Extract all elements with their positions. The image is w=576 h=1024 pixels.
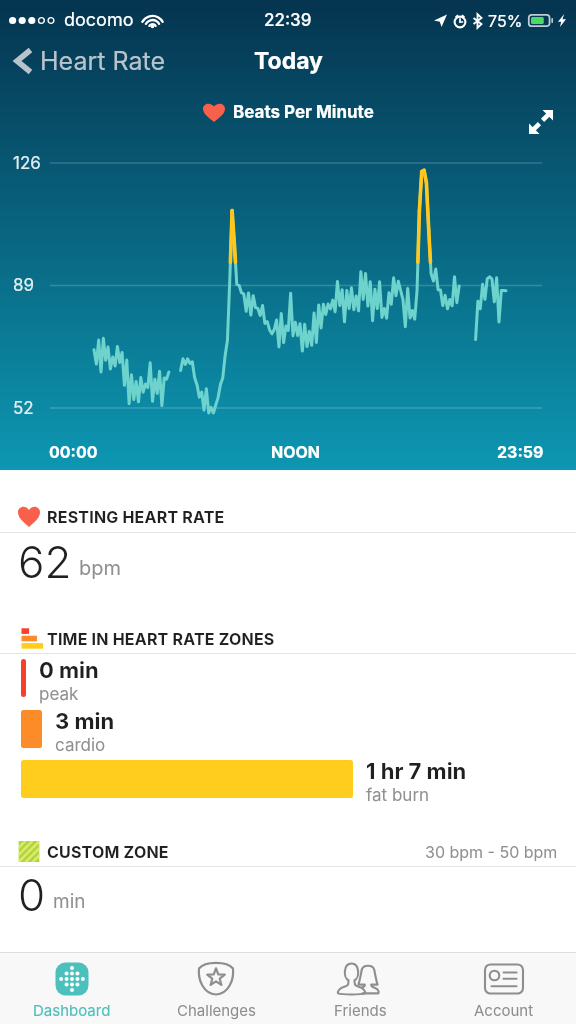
staticText: fat burn (366, 785, 430, 806)
staticText: min (53, 890, 86, 913)
staticText: 0 (18, 868, 46, 921)
staticText: TIME IN HEART RATE ZONES (47, 629, 275, 648)
staticText: cardio (55, 735, 106, 756)
staticText: Today (254, 47, 323, 75)
button[interactable]: Friends (288, 953, 432, 1024)
staticText: Heart Rate (40, 46, 165, 76)
staticText: 30 bpm - 50 bpm (425, 842, 558, 861)
button[interactable]: 1 hr 7 min (0, 757, 576, 811)
staticText: NOON (271, 442, 321, 461)
staticText: Dashboard (33, 1001, 111, 1019)
staticText: 75% (488, 11, 523, 30)
staticText: Account (474, 1001, 534, 1019)
button[interactable]: Dashboard (0, 953, 144, 1024)
button[interactable]: Heart Rate (0, 40, 177, 82)
staticText: 23:59 (497, 442, 544, 461)
staticText: 3 min (55, 708, 115, 735)
button[interactable]: 0 min (0, 656, 576, 710)
staticText: 52 (13, 398, 34, 419)
staticText: docomo (64, 9, 134, 31)
button[interactable]: Account (432, 953, 576, 1024)
staticText: CUSTOM ZONE (47, 842, 169, 861)
staticText: Challenges (177, 1001, 256, 1019)
staticText: bpm (79, 556, 122, 580)
button[interactable]: RESTING HEART RATE (0, 506, 576, 527)
button[interactable]: 3 min (0, 707, 576, 761)
staticText: Friends (334, 1001, 387, 1019)
button[interactable]: TIME IN HEART RATE ZONES (0, 628, 576, 649)
staticText: Beats Per Minute (233, 102, 374, 123)
button[interactable]: Expand chart (523, 104, 559, 140)
staticText: 22:39 (264, 10, 312, 31)
staticText: 126 (13, 153, 41, 174)
staticText: 1 hr 7 min (366, 758, 467, 785)
staticText: 00:00 (49, 442, 98, 461)
staticText: 62 (18, 535, 72, 588)
staticText: 89 (13, 275, 35, 296)
staticText: peak (39, 684, 79, 705)
staticText: 0 min (39, 657, 99, 684)
staticText: RESTING HEART RATE (47, 507, 225, 526)
button[interactable]: CUSTOM ZONE (0, 841, 576, 862)
button[interactable]: Challenges (144, 953, 288, 1024)
